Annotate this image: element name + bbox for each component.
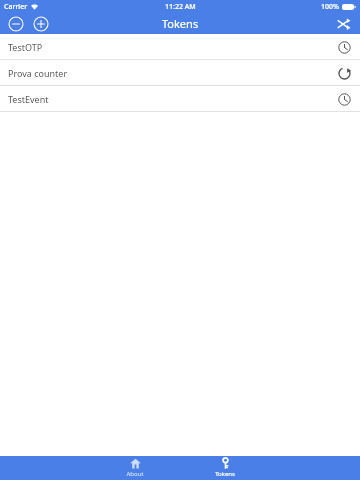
staticText: Carrier	[4, 2, 28, 12]
staticText: 100%	[321, 2, 339, 12]
staticText: Tokens	[215, 470, 235, 478]
staticText: 11:22 AM	[165, 2, 196, 12]
button[interactable]: TestEvent	[0, 86, 360, 111]
button[interactable]: Remove token	[6, 14, 26, 34]
staticText: TestEvent	[8, 93, 49, 105]
staticText: TestOTP	[8, 41, 43, 53]
button[interactable]: Prova counter	[0, 60, 360, 85]
button[interactable]: About	[90, 456, 180, 480]
staticText: Prova counter	[8, 67, 68, 79]
staticText: About	[126, 470, 144, 478]
button[interactable]: TestOTP	[0, 34, 360, 59]
button[interactable]: Shuffle	[334, 14, 354, 34]
button[interactable]: Tokens	[180, 456, 270, 480]
staticText: Tokens	[162, 16, 199, 31]
button[interactable]: Add token	[31, 14, 51, 34]
